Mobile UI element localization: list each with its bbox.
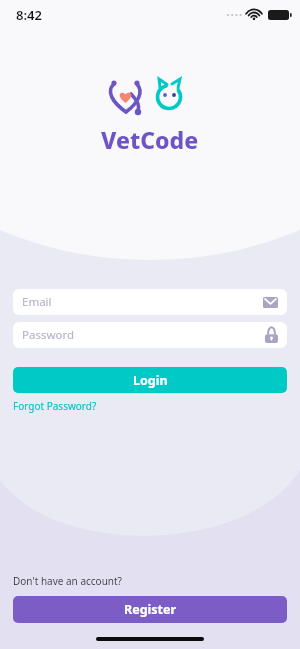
button[interactable]: Register <box>13 596 287 623</box>
button[interactable]: Forgot Password? <box>13 399 97 413</box>
staticText: Password <box>22 327 75 343</box>
button[interactable]: Password <box>13 322 287 348</box>
staticText: 8:42 <box>16 6 42 24</box>
staticText: Don't have an account? <box>13 574 122 588</box>
button[interactable]: Login <box>13 367 287 393</box>
button[interactable]: Email <box>13 289 287 315</box>
staticText: Register <box>124 601 177 618</box>
staticText: VetCode <box>101 124 199 155</box>
staticText: Forgot Password? <box>13 399 97 413</box>
other: Home indicator <box>96 637 204 641</box>
staticText: Email <box>22 294 52 310</box>
staticText: Login <box>133 372 168 389</box>
